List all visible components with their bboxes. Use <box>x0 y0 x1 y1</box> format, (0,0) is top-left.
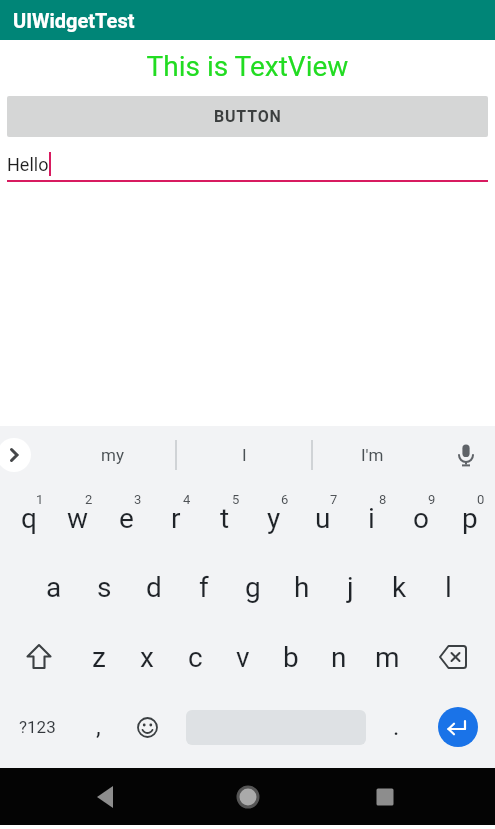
button[interactable] <box>123 692 172 762</box>
button[interactable]: g <box>228 553 277 622</box>
staticText: 3 <box>134 492 142 507</box>
staticText: This is TextView <box>0 50 495 83</box>
button[interactable]: my <box>82 445 142 465</box>
button[interactable]: I <box>214 445 274 465</box>
staticText: my <box>101 445 124 465</box>
staticText: UIWidgetTest <box>13 9 135 32</box>
staticText: s <box>97 571 112 604</box>
staticText: 0 <box>477 492 485 507</box>
button[interactable]: ?123 <box>0 692 74 762</box>
staticText: g <box>245 571 261 604</box>
staticText: c <box>188 641 203 674</box>
staticText: n <box>331 641 347 674</box>
button[interactable]: s <box>79 553 129 622</box>
button[interactable]: z <box>75 622 123 692</box>
staticText: I <box>242 445 247 465</box>
staticText: ?123 <box>19 717 56 737</box>
button[interactable]: h <box>277 553 326 622</box>
button[interactable] <box>453 442 479 468</box>
staticText: u <box>315 502 331 535</box>
staticText: I'm <box>361 445 384 465</box>
staticText: , <box>96 713 101 741</box>
staticText: 2 <box>85 492 93 507</box>
button[interactable]: UIWidgetTest <box>0 0 495 40</box>
button[interactable]: k <box>375 553 424 622</box>
staticText: r <box>171 502 181 535</box>
button[interactable]: p <box>445 484 494 553</box>
staticText: 1 <box>36 492 44 507</box>
button[interactable]: f <box>179 553 228 622</box>
button[interactable] <box>172 692 372 762</box>
staticText: o <box>413 502 429 535</box>
staticText: f <box>199 571 209 604</box>
button[interactable] <box>235 784 261 810</box>
button[interactable]: j <box>326 553 375 622</box>
button[interactable]: u <box>298 484 347 553</box>
staticText: w <box>67 502 89 535</box>
button[interactable]: x <box>123 622 171 692</box>
button[interactable]: r <box>151 484 200 553</box>
button[interactable]: d <box>129 553 179 622</box>
button[interactable]: , <box>74 692 123 762</box>
button[interactable]: w <box>53 484 102 553</box>
staticText: d <box>146 571 162 604</box>
staticText: h <box>294 571 310 604</box>
staticText: k <box>392 571 407 604</box>
staticText: z <box>92 641 106 674</box>
button[interactable] <box>411 622 495 692</box>
button[interactable]: t <box>200 484 249 553</box>
button[interactable]: b <box>267 622 315 692</box>
staticText: y <box>267 502 281 535</box>
button[interactable]: y <box>249 484 298 553</box>
button[interactable] <box>421 692 495 762</box>
button[interactable]: l <box>424 553 473 622</box>
button[interactable]: . <box>372 692 421 762</box>
button[interactable] <box>3 622 75 692</box>
staticText: x <box>140 641 154 674</box>
button[interactable]: a <box>29 553 79 622</box>
button[interactable]: e <box>102 484 151 553</box>
staticText: m <box>375 641 400 674</box>
button[interactable] <box>0 438 31 472</box>
staticText: 5 <box>232 492 240 507</box>
staticText: j <box>347 571 354 604</box>
staticText: v <box>236 641 250 674</box>
staticText: 7 <box>330 492 338 507</box>
staticText: p <box>462 502 478 535</box>
staticText: q <box>21 502 37 535</box>
staticText: 8 <box>379 492 387 507</box>
staticText: e <box>119 502 134 535</box>
button[interactable] <box>372 784 398 810</box>
button[interactable]: I'm <box>342 445 402 465</box>
staticText: 6 <box>281 492 289 507</box>
button[interactable] <box>92 784 118 810</box>
staticText: . <box>393 713 400 741</box>
staticText: i <box>368 502 375 535</box>
button[interactable]: o <box>396 484 445 553</box>
staticText: 4 <box>183 492 191 507</box>
button[interactable]: Hello <box>0 152 495 182</box>
staticText: BUTTON <box>214 107 282 126</box>
staticText: b <box>283 641 299 674</box>
staticText: t <box>220 502 230 535</box>
button[interactable]: c <box>171 622 219 692</box>
button[interactable]: v <box>219 622 267 692</box>
button[interactable]: i <box>347 484 396 553</box>
button[interactable]: n <box>315 622 363 692</box>
button[interactable]: m <box>363 622 411 692</box>
staticText: l <box>445 571 452 604</box>
button[interactable]: q <box>5 484 53 553</box>
staticText: a <box>46 571 62 604</box>
staticText: Hello <box>7 154 49 175</box>
button[interactable]: BUTTON <box>7 96 488 137</box>
staticText: 9 <box>428 492 436 507</box>
